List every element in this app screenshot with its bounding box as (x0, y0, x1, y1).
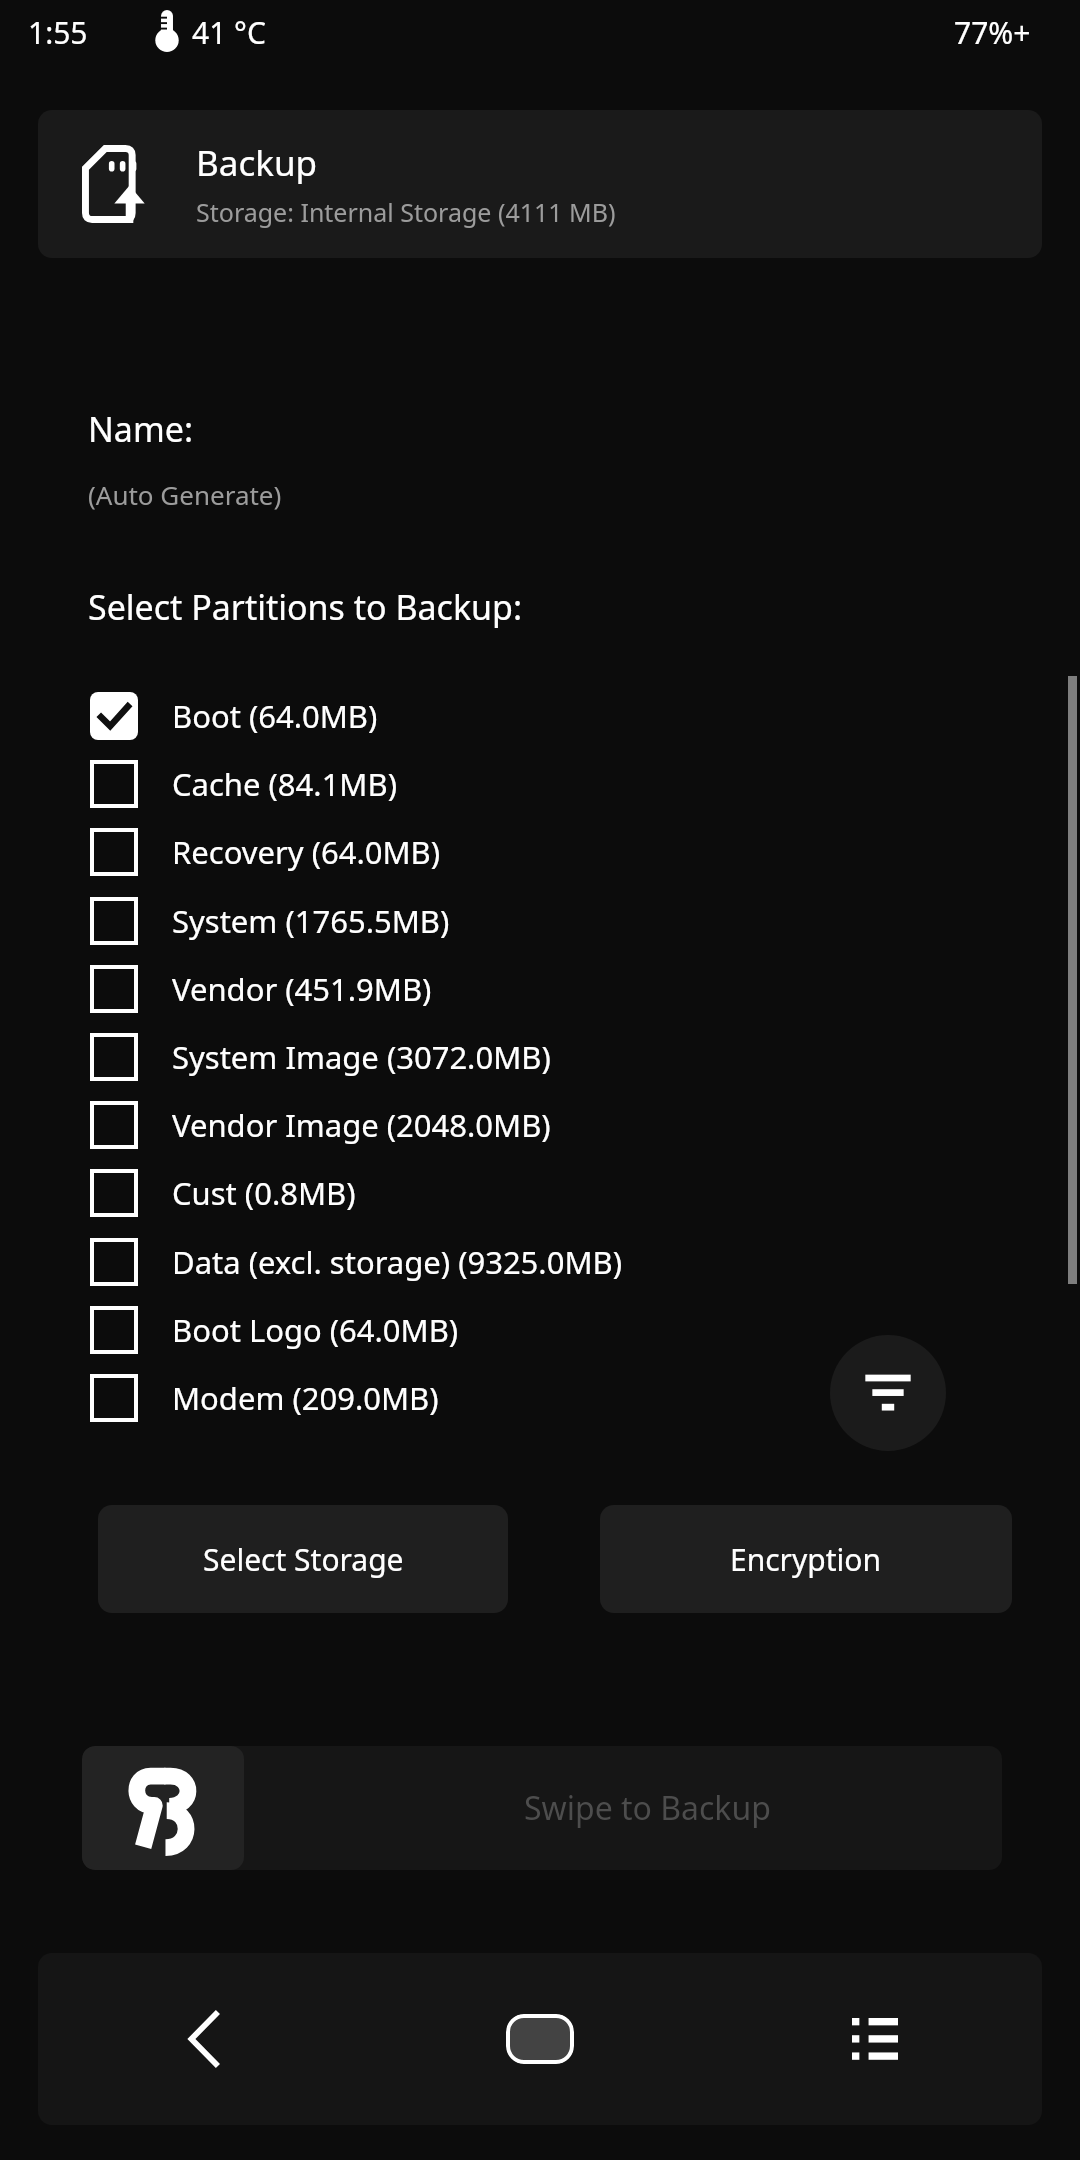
button[interactable]: Data (excl. storage) (9325.0MB) (0, 1228, 1080, 1296)
staticText: Vendor Image (2048.0MB) (172, 1104, 551, 1146)
button[interactable]: Select Storage (98, 1505, 508, 1613)
staticText: Encryption (730, 1539, 882, 1580)
button[interactable]: Cust (0.8MB) (0, 1159, 1080, 1227)
button[interactable]: Boot (64.0MB) (0, 682, 1080, 750)
button[interactable]: Recent apps (707, 1953, 1042, 2125)
staticText: Storage: Internal Storage (4111 MB) (196, 195, 616, 229)
staticText: Swipe to Backup (524, 1786, 771, 1830)
button[interactable]: System Image (3072.0MB) (0, 1023, 1080, 1091)
button[interactable]: Encryption (600, 1505, 1012, 1613)
staticText: Modem (209.0MB) (172, 1377, 439, 1419)
button[interactable]: Recovery (64.0MB) (0, 818, 1080, 886)
staticText: Recovery (64.0MB) (172, 831, 441, 873)
button[interactable]: Vendor Image (2048.0MB) (0, 1091, 1080, 1159)
button[interactable]: Boot Logo (64.0MB) (0, 1296, 1080, 1364)
staticText: Cache (84.1MB) (172, 763, 397, 805)
staticText: 1:55 (28, 12, 88, 53)
staticText: System Image (3072.0MB) (172, 1036, 551, 1078)
button[interactable]: Vendor (451.9MB) (0, 955, 1080, 1023)
staticText: Select Partitions to Backup: (88, 584, 523, 630)
staticText: Data (excl. storage) (9325.0MB) (172, 1241, 622, 1283)
button[interactable]: (Auto Generate) (88, 477, 282, 512)
button[interactable]: System (1765.5MB) (0, 887, 1080, 955)
staticText: 41 °C (192, 12, 266, 53)
button[interactable]: Swipe to Backup (82, 1746, 1002, 1870)
button[interactable]: Modem (209.0MB) (0, 1364, 1080, 1432)
staticText: Boot (64.0MB) (172, 695, 378, 737)
staticText: Cust (0.8MB) (172, 1172, 356, 1214)
staticText: Vendor (451.9MB) (172, 968, 432, 1010)
staticText: Backup (196, 139, 318, 187)
staticText: System (1765.5MB) (172, 900, 450, 942)
button[interactable]: Home (372, 1953, 707, 2125)
button[interactable]: Backup (38, 110, 1042, 258)
staticText: Name: (88, 406, 193, 452)
staticText: Boot Logo (64.0MB) (172, 1309, 459, 1351)
button[interactable]: Back (38, 1953, 372, 2125)
button[interactable]: Cache (84.1MB) (0, 750, 1080, 818)
staticText: 77%+ (954, 12, 1031, 53)
staticText: Select Storage (203, 1539, 404, 1580)
button[interactable]: Filter partitions (830, 1335, 946, 1451)
